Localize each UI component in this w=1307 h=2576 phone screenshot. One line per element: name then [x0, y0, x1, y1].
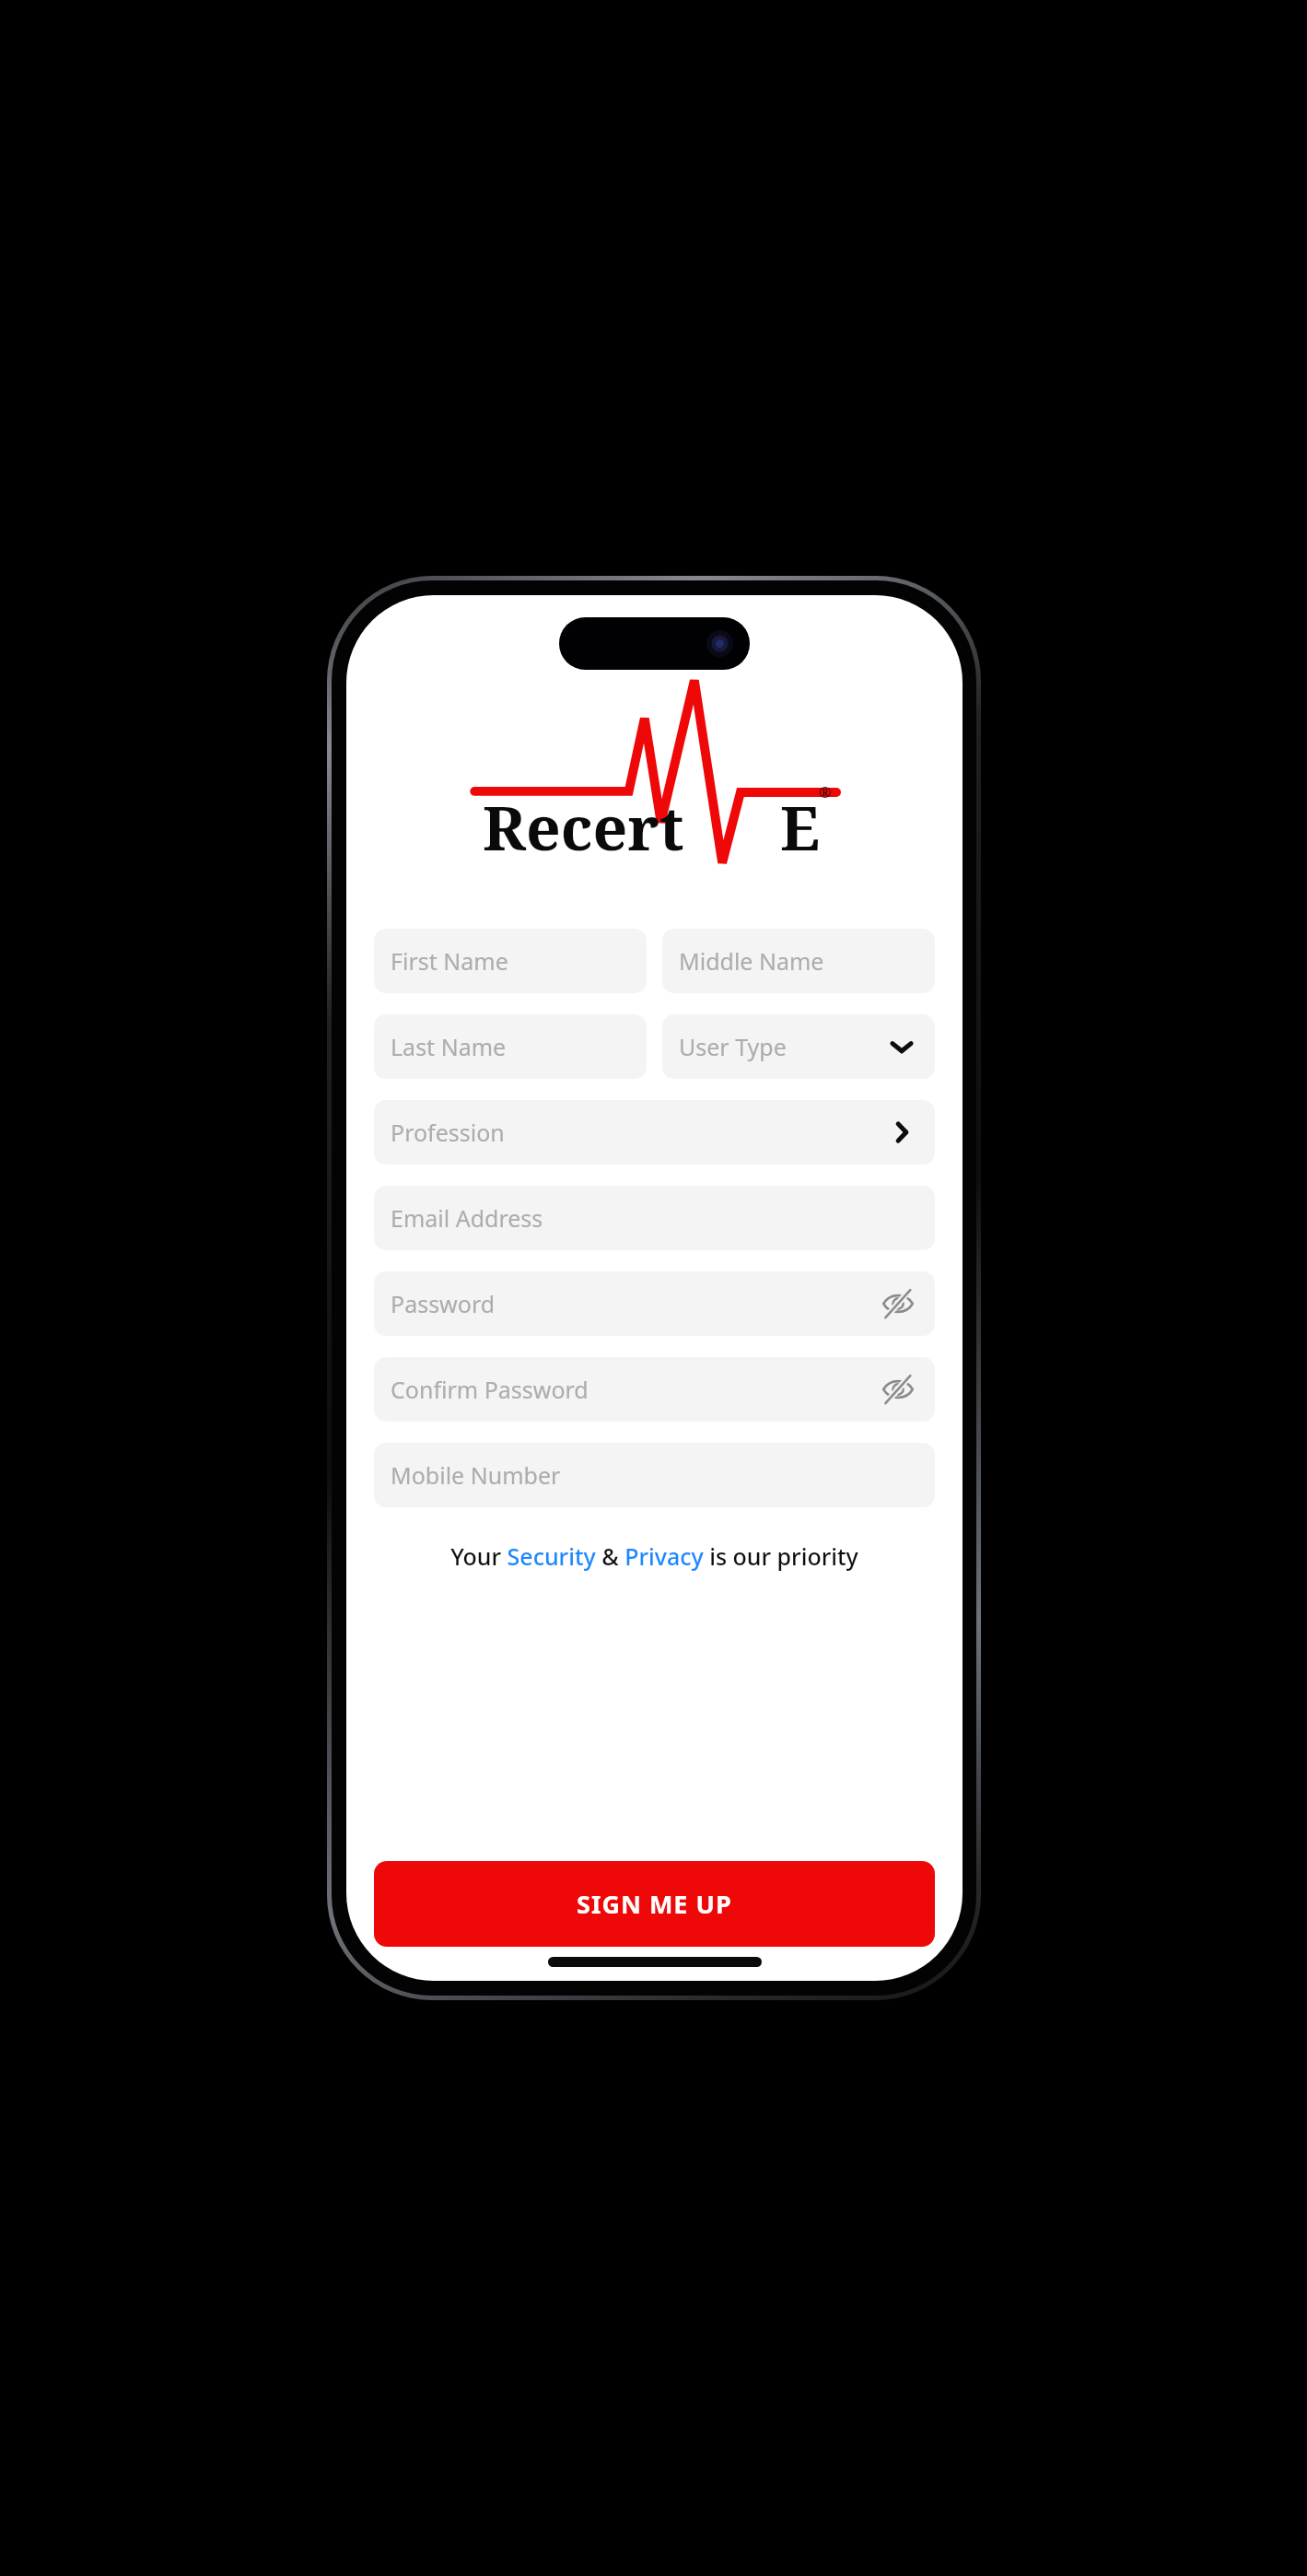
staticText: ®	[819, 782, 832, 802]
staticText: Confirm Password	[391, 1374, 589, 1405]
button[interactable]: SIGN ME UP	[374, 1861, 935, 1947]
button[interactable]: Middle Name	[662, 929, 935, 993]
staticText: SIGN ME UP	[577, 1887, 732, 1921]
staticText: User Type	[679, 1031, 787, 1062]
staticText: Email Address	[391, 1202, 543, 1234]
other: Show password	[881, 1373, 915, 1406]
button[interactable]: Password	[374, 1271, 935, 1336]
other: Show password	[881, 1287, 915, 1320]
other: Open user type list	[891, 1036, 913, 1058]
button[interactable]: Last Name	[374, 1014, 647, 1079]
button[interactable]: Confirm Password	[374, 1357, 935, 1422]
staticText: E	[780, 785, 821, 868]
button[interactable]: Mobile Number	[374, 1443, 935, 1507]
staticText: Recert	[483, 785, 684, 868]
button[interactable]: User Type	[662, 1014, 935, 1079]
staticText: Middle Name	[679, 945, 824, 977]
staticText: Your Security & Privacy is our priority	[346, 1540, 963, 1572]
staticText: First Name	[391, 945, 508, 977]
other: Choose profession	[891, 1121, 913, 1143]
button[interactable]: First Name	[374, 929, 647, 993]
staticText: Last Name	[391, 1031, 507, 1062]
staticText: Password	[391, 1288, 496, 1319]
button[interactable]: Email Address	[374, 1186, 935, 1250]
button[interactable]: Profession	[374, 1100, 935, 1165]
staticText: Profession	[391, 1117, 505, 1148]
staticText: Mobile Number	[391, 1459, 561, 1491]
